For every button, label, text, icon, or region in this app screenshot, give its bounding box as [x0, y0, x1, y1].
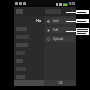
- staticText: OK: [58, 81, 63, 85]
- button[interactable]: [14, 73, 44, 80]
- staticText: Link: [53, 19, 74, 23]
- button[interactable]: [14, 49, 44, 57]
- button[interactable]: More options: [71, 10, 74, 13]
- staticText: 9:10: [69, 2, 75, 6]
- button[interactable]: Ha: [14, 16, 44, 25]
- button[interactable]: [14, 25, 44, 33]
- button[interactable]: Link: [45, 18, 75, 24]
- button[interactable]: [14, 33, 44, 41]
- button[interactable]: Upload: [45, 36, 75, 42]
- button[interactable]: Edit: [45, 27, 75, 33]
- button[interactable]: [14, 41, 44, 49]
- button[interactable]: [14, 57, 44, 65]
- staticText: Upload: [53, 37, 74, 41]
- button[interactable]: OK: [44, 80, 76, 86]
- staticText: Ha: [36, 18, 42, 23]
- staticText: Edit: [53, 28, 74, 32]
- button[interactable]: [14, 65, 44, 73]
